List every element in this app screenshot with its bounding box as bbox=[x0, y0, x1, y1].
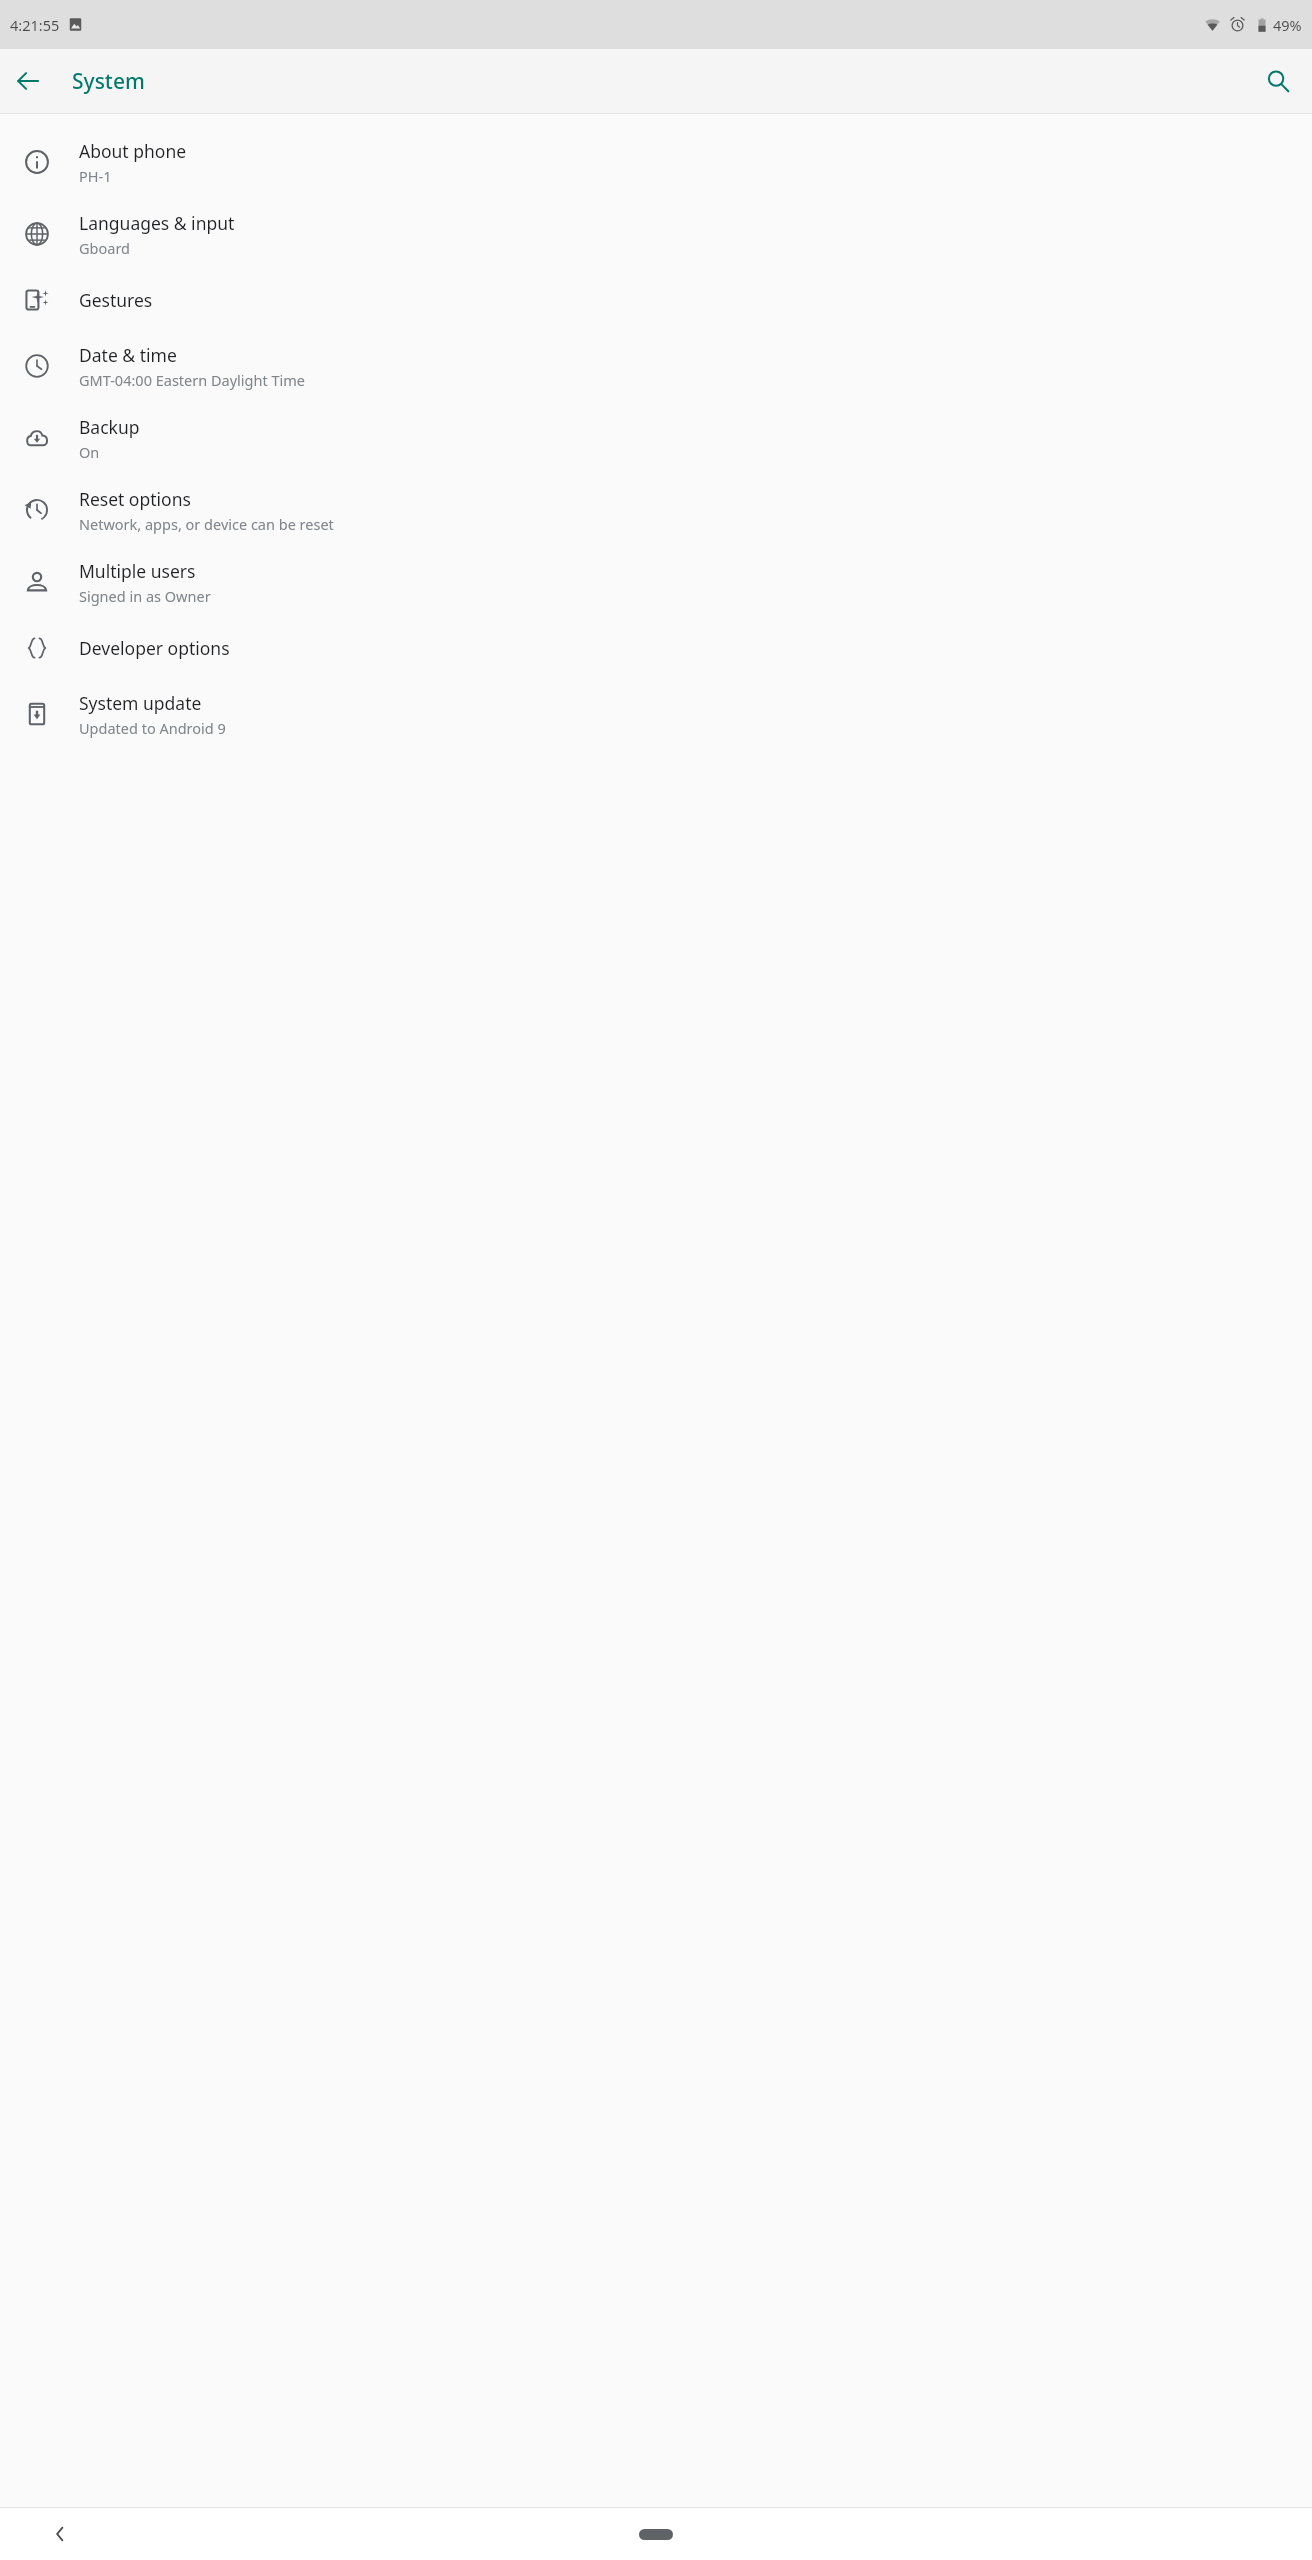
staticText: About phone bbox=[79, 139, 187, 163]
staticText: 49% bbox=[1273, 15, 1302, 35]
staticText: Date & time bbox=[79, 343, 177, 367]
button[interactable]: System update bbox=[0, 678, 1312, 750]
staticText: Updated to Android 9 bbox=[79, 718, 226, 738]
staticText: Network, apps, or device can be reset bbox=[79, 514, 334, 534]
button[interactable]: Backup bbox=[0, 402, 1312, 474]
staticText: Gestures bbox=[79, 288, 153, 312]
button[interactable]: Reset options bbox=[0, 474, 1312, 546]
button[interactable]: Developer options bbox=[0, 618, 1312, 678]
button[interactable]: Gestures bbox=[0, 270, 1312, 330]
button[interactable]: Multiple users bbox=[0, 546, 1312, 618]
staticText: PH-1 bbox=[79, 166, 112, 186]
button[interactable]: Back bbox=[38, 2512, 82, 2556]
button[interactable]: Search bbox=[1254, 57, 1302, 105]
button[interactable]: Home bbox=[639, 2529, 673, 2540]
staticText: Developer options bbox=[79, 636, 230, 660]
staticText: Languages & input bbox=[79, 211, 235, 235]
button[interactable]: About phone bbox=[0, 126, 1312, 198]
button[interactable]: Languages & input bbox=[0, 198, 1312, 270]
button[interactable]: Date & time bbox=[0, 330, 1312, 402]
staticText: Multiple users bbox=[79, 559, 196, 583]
staticText: Reset options bbox=[79, 487, 191, 511]
staticText: Backup bbox=[79, 415, 140, 439]
staticText: Gboard bbox=[79, 238, 130, 258]
staticText: GMT-04:00 Eastern Daylight Time bbox=[79, 370, 305, 390]
staticText: Signed in as Owner bbox=[79, 586, 211, 606]
staticText: System bbox=[72, 67, 145, 96]
staticText: 4:21:55 bbox=[10, 15, 60, 35]
button[interactable]: Back bbox=[4, 57, 52, 105]
staticText: System update bbox=[79, 691, 202, 715]
staticText: On bbox=[79, 442, 100, 462]
